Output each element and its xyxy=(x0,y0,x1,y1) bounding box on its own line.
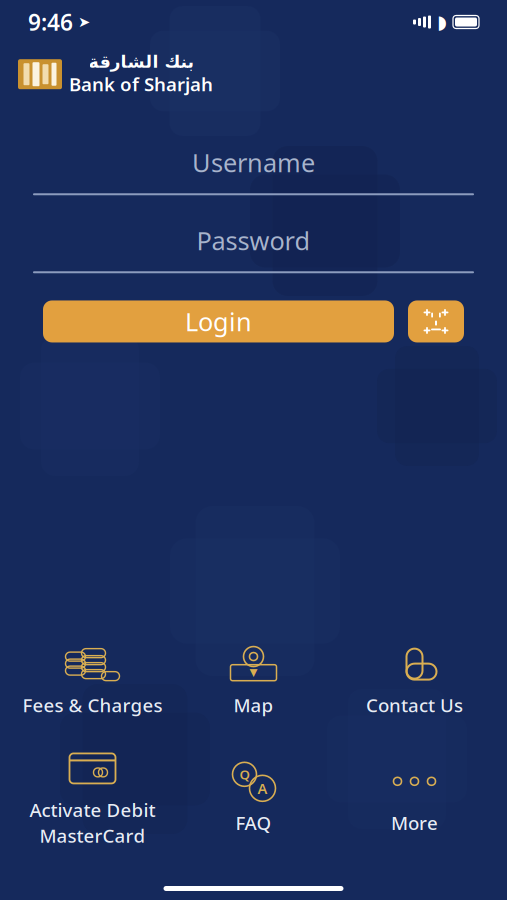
button[interactable]: Fees & Charges xyxy=(12,639,173,721)
staticText: بنك الشارقة xyxy=(88,52,194,72)
staticText: FAQ xyxy=(235,810,271,835)
button[interactable]: Login xyxy=(43,300,394,342)
button[interactable]: Contact Us xyxy=(334,639,495,721)
button[interactable]: Activate Debit xyxy=(12,743,173,852)
button[interactable]: Q xyxy=(173,756,334,839)
staticText: Fees & Charges xyxy=(22,693,162,717)
staticText: ▾ xyxy=(249,662,257,681)
staticText: ➤ xyxy=(78,14,90,30)
staticText: Bank of Sharjah xyxy=(69,72,213,96)
staticText: Password xyxy=(196,224,310,257)
staticText: Activate Debit xyxy=(29,797,155,822)
staticText: ◗ xyxy=(437,11,447,33)
button[interactable]: Log in with Face ID xyxy=(408,300,464,342)
button[interactable]: More xyxy=(334,756,495,839)
staticText: A xyxy=(257,779,267,798)
button[interactable]: ▾ xyxy=(173,639,334,721)
staticText: Contact Us xyxy=(366,693,463,717)
staticText: Login xyxy=(185,305,252,338)
button[interactable]: Password xyxy=(33,216,474,272)
staticText: 9:46 xyxy=(28,7,73,37)
staticText: Q xyxy=(239,765,249,783)
staticText: MasterCard xyxy=(39,823,145,848)
staticText: More xyxy=(391,810,438,835)
staticText: Map xyxy=(233,693,273,717)
staticText: Username xyxy=(192,146,315,179)
button[interactable]: Username xyxy=(33,138,474,194)
